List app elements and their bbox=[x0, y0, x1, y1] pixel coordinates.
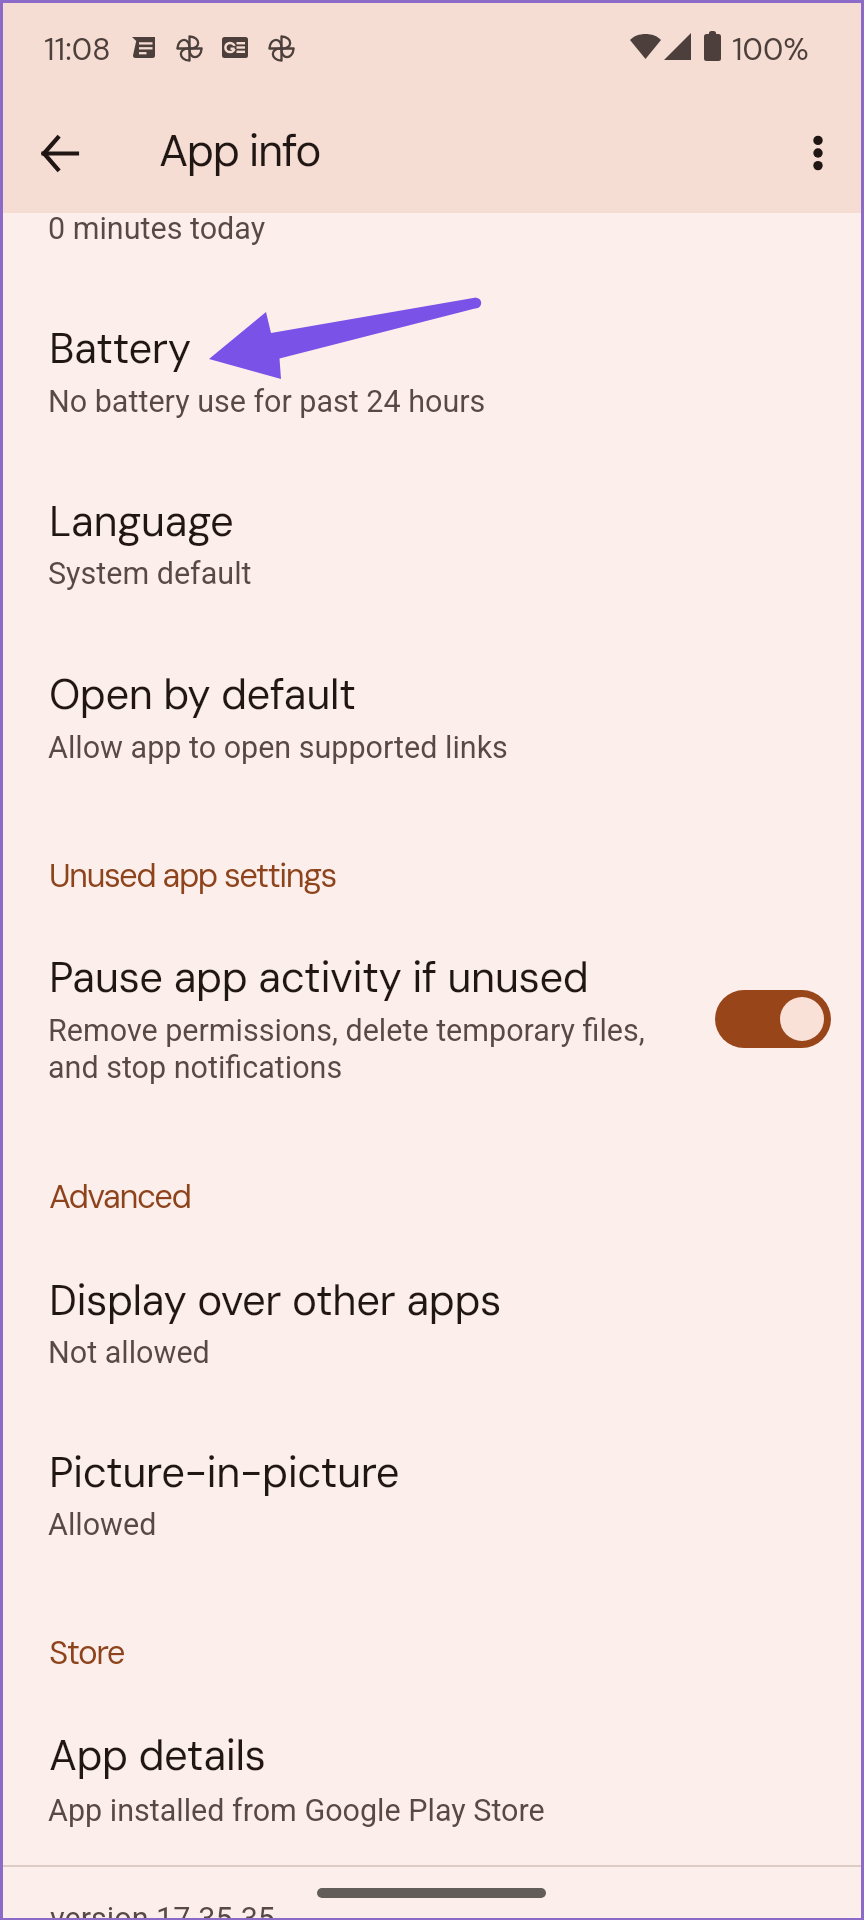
staticText: version 17.35.35 bbox=[50, 1901, 275, 1920]
staticText: Not allowed bbox=[48, 1335, 210, 1371]
staticText: Pause app activity if unused bbox=[49, 950, 589, 1005]
button[interactable] bbox=[0, 636, 864, 776]
button[interactable] bbox=[0, 918, 864, 1114]
button[interactable]: Back bbox=[23, 117, 95, 189]
button[interactable] bbox=[0, 1412, 864, 1552]
staticText: Allow app to open supported links bbox=[48, 730, 508, 766]
staticText: 100% bbox=[732, 29, 809, 69]
staticText: App info bbox=[159, 122, 321, 179]
button[interactable] bbox=[0, 1696, 864, 1836]
staticText: Language bbox=[49, 494, 234, 549]
button[interactable] bbox=[0, 290, 864, 430]
staticText: Unused app settings bbox=[49, 854, 336, 897]
button[interactable] bbox=[0, 462, 864, 602]
staticText: System default bbox=[48, 556, 252, 592]
staticText: Open by default bbox=[49, 667, 356, 722]
button[interactable]: More options bbox=[782, 117, 854, 189]
staticText: App installed from Google Play Store bbox=[48, 1793, 545, 1829]
button[interactable]: Pause app activity if unused toggle bbox=[715, 990, 831, 1048]
staticText: and stop notifications bbox=[48, 1050, 343, 1086]
staticText: Store bbox=[49, 1631, 124, 1674]
staticText: Battery bbox=[49, 321, 191, 376]
staticText: Allowed bbox=[48, 1507, 157, 1543]
staticText: Display over other apps bbox=[49, 1273, 501, 1328]
staticText: App details bbox=[49, 1728, 266, 1783]
staticText: 11:08 bbox=[44, 29, 111, 69]
staticText: No battery use for past 24 hours bbox=[48, 384, 486, 420]
staticText: Remove permissions, delete temporary fil… bbox=[48, 1013, 645, 1049]
staticText: 0 minutes today bbox=[48, 211, 266, 247]
button[interactable] bbox=[0, 1240, 864, 1380]
staticText: Picture-in-picture bbox=[49, 1445, 400, 1500]
staticText: Advanced bbox=[49, 1175, 191, 1218]
